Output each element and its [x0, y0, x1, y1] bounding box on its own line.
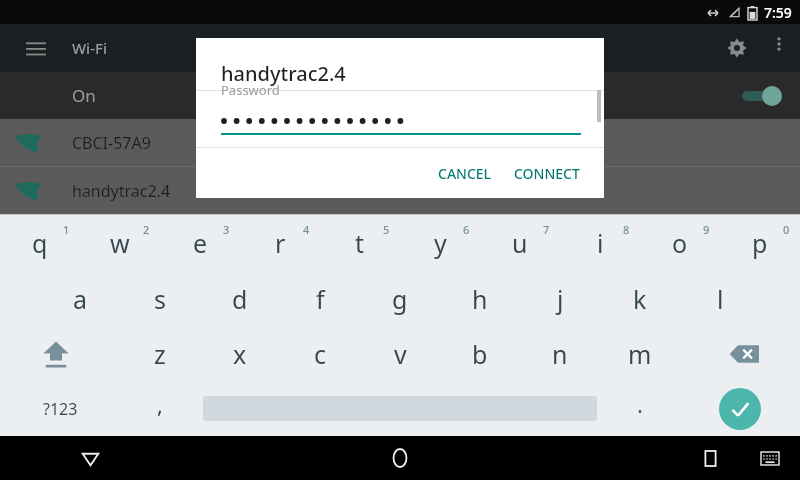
- button[interactable]: w: [80, 215, 160, 270]
- button[interactable]: Backspace: [704, 326, 784, 381]
- button[interactable]: ,: [120, 381, 200, 436]
- button[interactable]: r: [240, 215, 320, 270]
- button[interactable]: m: [600, 326, 680, 381]
- button[interactable]: x: [200, 326, 280, 381]
- staticText: CBCI-57A9: [72, 132, 151, 154]
- button[interactable]: k: [600, 271, 680, 326]
- button[interactable]: o: [640, 215, 720, 270]
- button[interactable]: t: [320, 215, 400, 270]
- staticText: ,: [157, 389, 163, 419]
- button[interactable]: b: [440, 326, 520, 381]
- staticText: s: [154, 282, 166, 316]
- button[interactable]: Enter: [700, 381, 780, 436]
- staticText: h: [472, 282, 488, 316]
- button[interactable]: h: [440, 271, 520, 326]
- staticText: .: [637, 389, 643, 419]
- button[interactable]: Home: [376, 436, 424, 480]
- button[interactable]: Back: [66, 436, 114, 480]
- staticText: Wi-Fi: [72, 38, 107, 58]
- staticText: CONNECT: [514, 164, 580, 183]
- staticText: u: [512, 226, 528, 260]
- staticText: y: [434, 226, 447, 260]
- button[interactable]: g: [360, 271, 440, 326]
- button[interactable]: p: [720, 215, 800, 270]
- staticText: z: [154, 337, 166, 371]
- staticText: n: [552, 337, 568, 371]
- button[interactable]: d: [200, 271, 280, 326]
- staticText: k: [633, 282, 647, 316]
- staticText: i: [597, 226, 604, 260]
- staticText: c: [314, 337, 327, 371]
- staticText: f: [316, 282, 325, 316]
- button[interactable]: v: [360, 326, 440, 381]
- staticText: t: [355, 226, 365, 260]
- button[interactable]: CBCI-57A9: [0, 119, 800, 166]
- button[interactable]: y: [400, 215, 480, 270]
- staticText: ?123: [43, 398, 78, 420]
- button[interactable]: j: [520, 271, 600, 326]
- button[interactable]: q: [0, 215, 80, 270]
- staticText: l: [717, 282, 724, 316]
- staticText: x: [233, 337, 247, 371]
- staticText: 7: [543, 222, 550, 237]
- button[interactable]: CONNECT: [506, 154, 588, 193]
- staticText: b: [472, 337, 488, 371]
- button[interactable]: ?123: [20, 381, 100, 436]
- staticText: 3: [223, 222, 230, 237]
- button[interactable]: i: [560, 215, 640, 270]
- staticText: v: [394, 337, 407, 371]
- staticText: handytrac2.4: [72, 180, 171, 202]
- button[interactable]: u: [480, 215, 560, 270]
- staticText: p: [752, 226, 768, 260]
- staticText: a: [73, 282, 88, 316]
- staticText: d: [232, 282, 248, 316]
- button[interactable]: Recent apps: [686, 436, 734, 480]
- staticText: j: [557, 282, 564, 316]
- staticText: r: [275, 226, 286, 260]
- button[interactable]: s: [120, 271, 200, 326]
- button[interactable]: f: [280, 271, 360, 326]
- button[interactable]: Navigation menu: [12, 24, 60, 72]
- button[interactable]: Shift: [16, 326, 96, 381]
- staticText: 7:59: [764, 3, 792, 22]
- staticText: 0: [783, 222, 790, 237]
- staticText: 8: [623, 222, 630, 237]
- button[interactable]: l: [680, 271, 760, 326]
- staticText: 1: [63, 222, 70, 237]
- staticText: 4: [303, 222, 310, 237]
- staticText: CANCEL: [438, 164, 492, 183]
- staticText: handytrac2.4: [221, 60, 346, 87]
- staticText: 5: [383, 222, 390, 237]
- button[interactable]: handytrac2.4: [0, 167, 800, 214]
- staticText: m: [628, 337, 652, 371]
- button[interactable]: c: [280, 326, 360, 381]
- button[interactable]: Switch keyboard: [748, 436, 792, 480]
- staticText: 6: [463, 222, 470, 237]
- staticText: e: [193, 226, 208, 260]
- button[interactable]: [221, 110, 581, 132]
- button[interactable]: More options: [759, 24, 799, 64]
- button[interactable]: Wi-Fi toggle: [736, 76, 788, 116]
- staticText: On: [72, 84, 96, 107]
- staticText: g: [392, 282, 408, 316]
- staticText: 9: [703, 222, 710, 237]
- staticText: 2: [143, 222, 150, 237]
- staticText: q: [32, 226, 48, 260]
- button[interactable]: n: [520, 326, 600, 381]
- button[interactable]: CANCEL: [430, 154, 500, 193]
- button[interactable]: a: [40, 271, 120, 326]
- staticText: Password: [221, 81, 280, 99]
- button[interactable]: Settings: [713, 24, 761, 72]
- button[interactable]: .: [600, 381, 680, 436]
- button[interactable]: z: [120, 326, 200, 381]
- staticText: o: [672, 226, 688, 260]
- staticText: w: [110, 226, 130, 260]
- button[interactable]: e: [160, 215, 240, 270]
